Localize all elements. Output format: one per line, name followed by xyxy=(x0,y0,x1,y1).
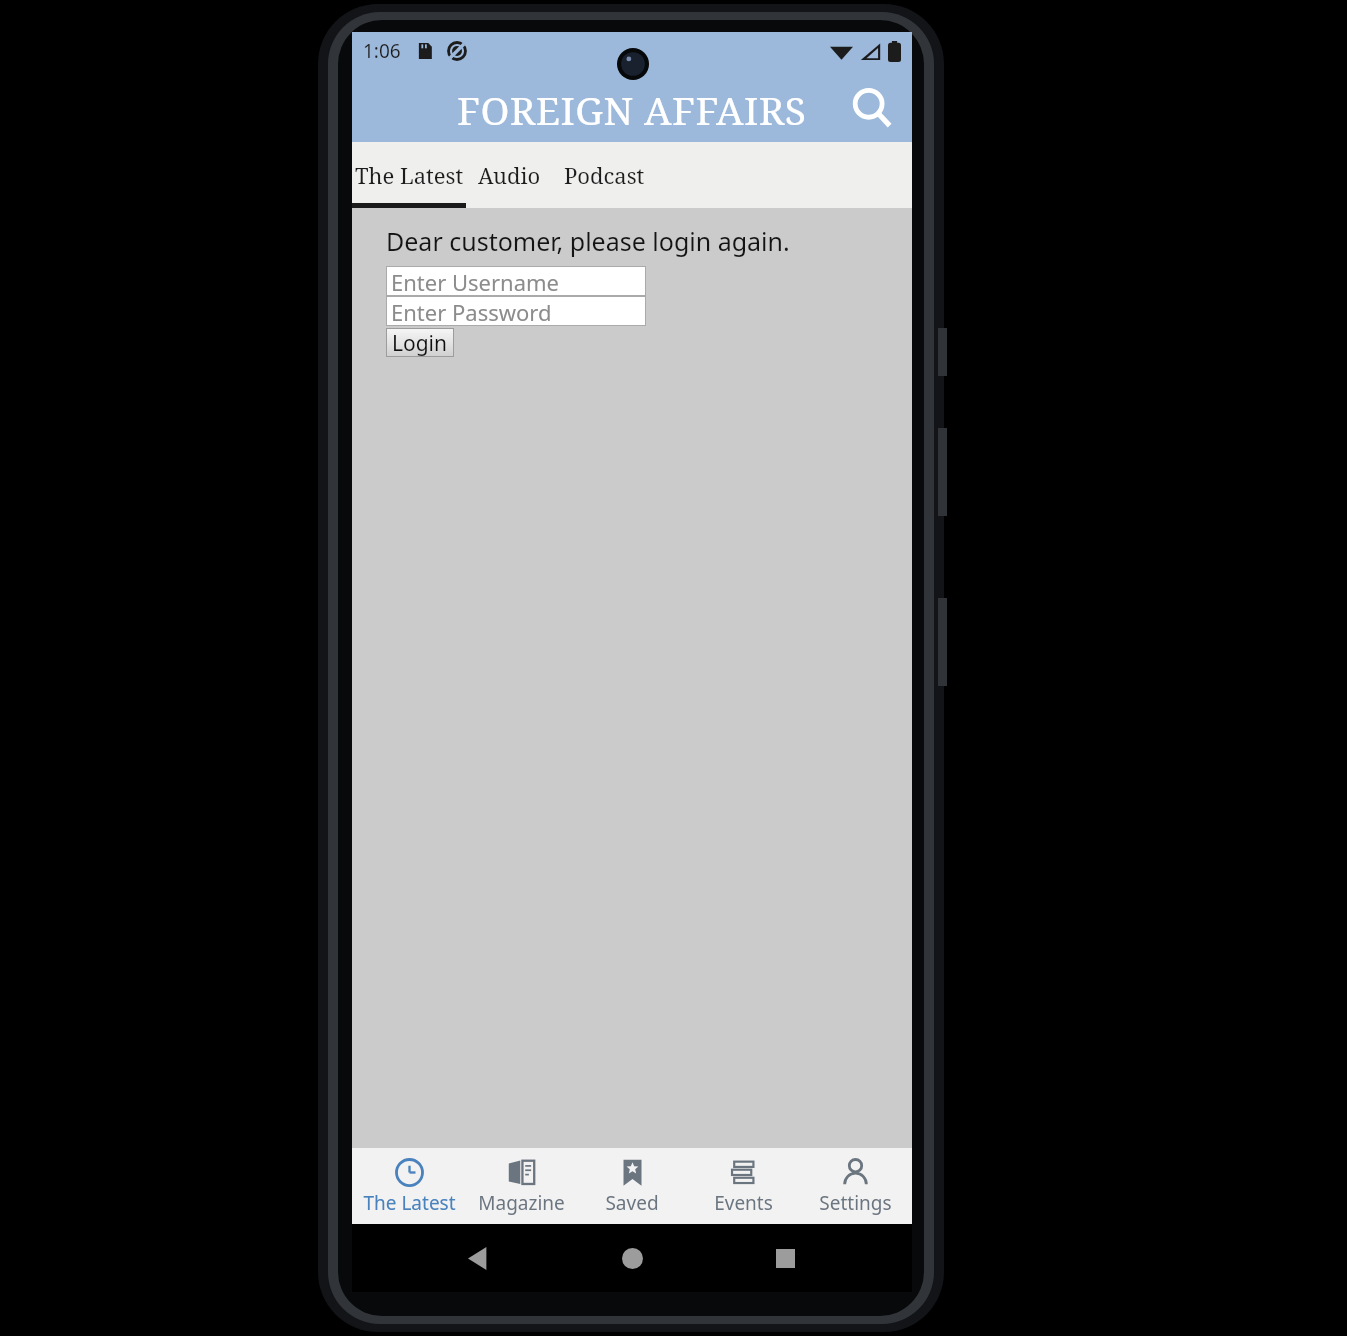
staticText: FOREIGN AFFAIRS xyxy=(457,83,807,136)
staticText: 1:06 xyxy=(363,38,401,64)
staticText: The Latest xyxy=(355,160,464,190)
button[interactable]: Saved xyxy=(578,1148,686,1224)
button[interactable]: Home xyxy=(606,1232,658,1284)
staticText: Events xyxy=(714,1190,773,1216)
staticText: Enter Password xyxy=(391,297,552,325)
staticText: Audio xyxy=(478,160,541,190)
staticText: Saved xyxy=(605,1190,659,1216)
button[interactable]: Enter Username xyxy=(387,267,645,295)
button[interactable]: Settings xyxy=(801,1148,909,1224)
staticText: Magazine xyxy=(478,1190,565,1216)
staticText: Dear customer, please login again. xyxy=(386,224,790,258)
staticText: Settings xyxy=(819,1190,892,1216)
button[interactable]: Login xyxy=(387,329,453,356)
staticText: The Latest xyxy=(363,1190,456,1216)
button[interactable]: Search xyxy=(840,76,904,140)
button[interactable]: Audio xyxy=(466,142,552,208)
button[interactable]: Magazine xyxy=(467,1148,575,1224)
staticText: Enter Username xyxy=(391,267,560,295)
button[interactable]: The Latest xyxy=(352,142,466,208)
button[interactable]: Back xyxy=(453,1232,505,1284)
button[interactable]: Podcast xyxy=(552,142,656,208)
button[interactable]: Enter Password xyxy=(387,297,645,325)
button[interactable]: The Latest xyxy=(355,1148,463,1224)
button[interactable]: Recent apps xyxy=(759,1232,811,1284)
staticText: Login xyxy=(392,329,448,356)
button[interactable]: Events xyxy=(689,1148,797,1224)
staticText: Podcast xyxy=(564,160,645,190)
